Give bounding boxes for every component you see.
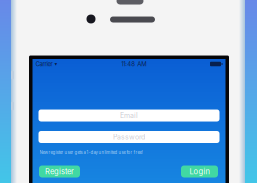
button[interactable]: Register xyxy=(39,165,80,177)
staticText: 11:48 AM xyxy=(121,60,146,68)
staticText: Login xyxy=(189,167,209,176)
staticText: New register user gets a 1-day unlimited… xyxy=(39,150,142,155)
button[interactable]: Login xyxy=(181,165,218,177)
staticText: Password xyxy=(113,133,145,141)
staticText: Carrier xyxy=(35,60,52,68)
staticText: ▾ xyxy=(52,61,57,67)
staticText: Register xyxy=(45,167,74,176)
staticText: Email xyxy=(120,111,138,120)
